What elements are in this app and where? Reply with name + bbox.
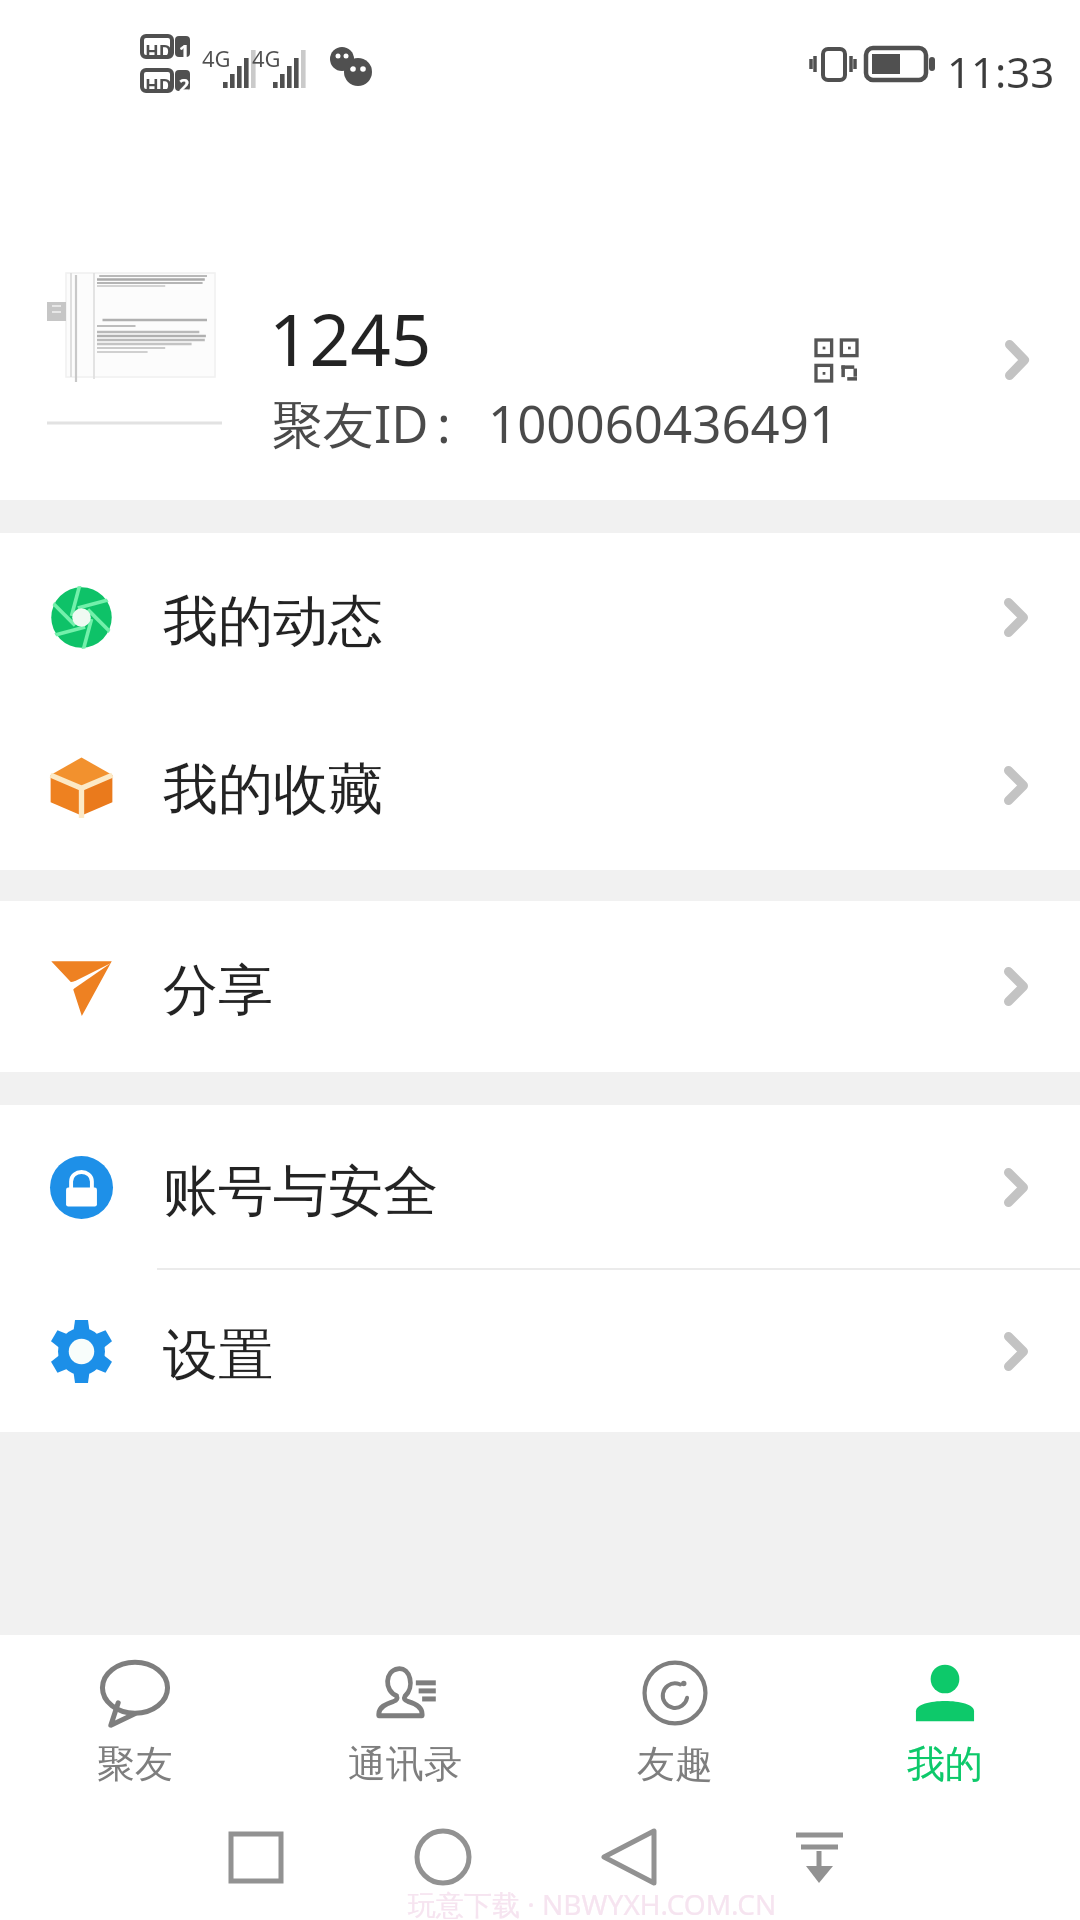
staticText: HD — [145, 73, 172, 98]
button[interactable]: 1245 — [0, 130, 1080, 500]
staticText: 4G — [252, 43, 281, 73]
staticText: 玩意下载 · NBWYXH.COM.CN — [408, 1885, 777, 1920]
staticText: 4G — [202, 43, 231, 73]
staticText: 11:33 — [947, 43, 1055, 100]
staticText: 100060436491 — [488, 388, 839, 457]
staticText: 我的收藏 — [163, 755, 383, 824]
button[interactable]: 账号与安全 — [0, 1105, 1080, 1270]
button[interactable]: 通讯录 — [270, 1635, 540, 1800]
button[interactable]: 我的 — [810, 1635, 1080, 1800]
button[interactable]: QR code — [816, 340, 857, 381]
staticText: 1 — [179, 39, 190, 64]
staticText: 聚友ID — [272, 388, 429, 458]
staticText: HD — [145, 39, 172, 64]
staticText: 我的动态 — [163, 587, 383, 656]
staticText: 友趣 — [637, 1740, 713, 1788]
staticText: 1245 — [269, 290, 432, 387]
staticText: : — [437, 388, 451, 457]
staticText: 通讯录 — [348, 1740, 462, 1788]
staticText: 设置 — [163, 1321, 273, 1390]
staticText: 账号与安全 — [163, 1157, 438, 1226]
staticText: 我的 — [907, 1740, 983, 1788]
staticText: 聚友 — [97, 1740, 173, 1788]
button[interactable]: 我的动态 — [0, 533, 1080, 701]
button[interactable]: 我的收藏 — [0, 701, 1080, 870]
button[interactable]: 聚友 — [0, 1635, 270, 1800]
button[interactable]: 友趣 — [540, 1635, 810, 1800]
button[interactable]: 设置 — [0, 1270, 1080, 1432]
button[interactable]: 分享 — [0, 901, 1080, 1072]
button[interactable]: Profile details — [1005, 340, 1029, 380]
staticText: 2 — [179, 73, 190, 98]
staticText: 分享 — [163, 956, 273, 1025]
